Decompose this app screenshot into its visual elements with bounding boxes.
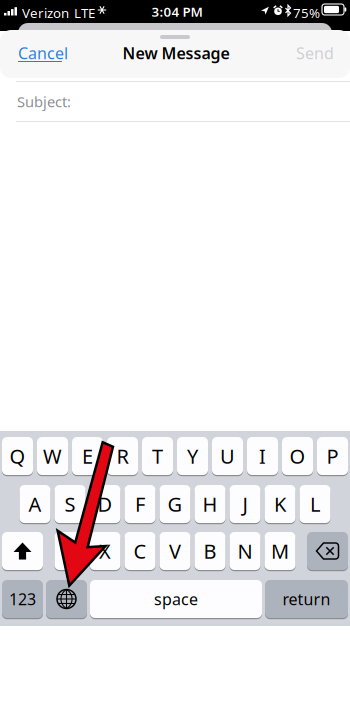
button[interactable]: F: [124, 485, 155, 524]
staticText: G: [167, 491, 182, 517]
button[interactable]: space: [90, 580, 262, 619]
staticText: E: [82, 443, 93, 469]
staticText: S: [64, 491, 75, 517]
staticText: Send: [296, 42, 334, 64]
staticText: 123: [9, 588, 36, 610]
button[interactable]: V: [159, 532, 190, 571]
staticText: K: [274, 491, 286, 517]
button[interactable]: M: [264, 532, 295, 571]
staticText: Q: [9, 443, 25, 469]
staticText: L: [310, 491, 320, 517]
staticText: 3:04 PM: [151, 3, 202, 20]
button[interactable]: Send: [290, 45, 334, 61]
staticText: V: [169, 538, 181, 564]
button[interactable]: R: [107, 437, 138, 476]
button[interactable]: Cancel: [18, 45, 64, 67]
button[interactable]: U: [212, 437, 243, 476]
button[interactable]: 123: [2, 580, 43, 619]
button[interactable]: L: [299, 485, 330, 524]
staticText: J: [242, 491, 247, 517]
staticText: D: [97, 491, 112, 517]
staticText: Verizon: [22, 4, 69, 22]
staticText: O: [289, 443, 305, 469]
staticText: return: [282, 588, 330, 610]
button[interactable]: I: [247, 437, 278, 476]
button[interactable]: D: [89, 485, 120, 524]
button[interactable]: W: [37, 437, 68, 476]
staticText: B: [203, 538, 216, 564]
button[interactable]: C: [124, 532, 155, 571]
button[interactable]: H: [194, 485, 225, 524]
staticText: M: [271, 538, 289, 564]
button[interactable]: S: [54, 485, 85, 524]
staticText: U: [220, 443, 235, 469]
staticText: R: [116, 443, 128, 469]
button[interactable]: Next keyboard: [46, 580, 87, 619]
button[interactable]: K: [264, 485, 295, 524]
button[interactable]: Z: [54, 532, 85, 571]
staticText: C: [133, 538, 146, 564]
staticText: space: [154, 588, 198, 610]
button[interactable]: P: [317, 437, 348, 476]
button[interactable]: T: [142, 437, 173, 476]
button[interactable]: Y: [177, 437, 208, 476]
staticText: W: [43, 443, 62, 469]
staticText: Cancel: [18, 42, 68, 64]
staticText: 75%: [293, 4, 320, 22]
staticText: Y: [187, 443, 198, 469]
staticText: Subject:: [17, 92, 71, 111]
button[interactable]: Subject:: [17, 82, 335, 121]
button[interactable]: N: [229, 532, 260, 571]
staticText: A: [28, 491, 41, 517]
staticText: LTE: [74, 4, 95, 22]
staticText: F: [135, 491, 145, 517]
button[interactable]: Q: [2, 437, 33, 476]
button[interactable]: X: [89, 532, 120, 571]
staticText: X: [99, 538, 111, 564]
button[interactable]: E: [72, 437, 103, 476]
staticText: I: [259, 443, 266, 469]
button[interactable]: O: [282, 437, 313, 476]
button[interactable]: B: [194, 532, 225, 571]
button[interactable]: J: [229, 485, 260, 524]
button[interactable]: return: [265, 580, 348, 619]
staticText: H: [202, 491, 217, 517]
staticText: New Message: [122, 42, 229, 64]
staticText: P: [326, 443, 338, 469]
button[interactable]: G: [159, 485, 190, 524]
staticText: N: [237, 538, 252, 564]
staticText: Z: [64, 538, 75, 564]
button[interactable]: Delete: [307, 532, 348, 571]
button[interactable]: Shift: [2, 532, 43, 571]
button[interactable]: A: [19, 485, 50, 524]
staticText: T: [152, 443, 163, 469]
